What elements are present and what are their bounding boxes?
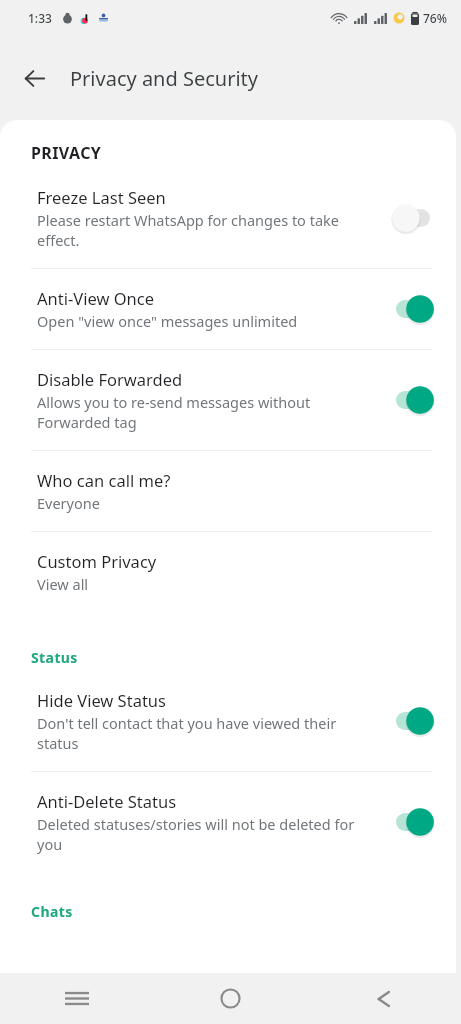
button[interactable]: Hide View Status xyxy=(0,671,456,771)
staticText: Don't tell contact that you have viewed … xyxy=(37,713,378,753)
button[interactable]: Freeze Last Seen xyxy=(0,168,456,268)
staticText: Everyone xyxy=(37,493,100,513)
staticText: Please restart WhatsApp for changes to t… xyxy=(37,210,378,250)
staticText: Chats xyxy=(31,902,73,921)
staticText: Privacy and Security xyxy=(70,65,259,92)
staticText: Anti-View Once xyxy=(37,287,154,309)
staticText: Anti-Delete Status xyxy=(37,790,177,812)
button[interactable]: Custom Privacy xyxy=(0,532,456,612)
button[interactable]: Who can call me? xyxy=(0,451,456,531)
button[interactable]: Toggle on xyxy=(390,706,436,736)
button[interactable]: Toggle on xyxy=(390,385,436,415)
staticText: View all xyxy=(37,574,89,594)
button[interactable]: Toggle on xyxy=(390,807,436,837)
button[interactable]: Back xyxy=(10,54,58,102)
button[interactable]: Home xyxy=(153,973,307,1024)
button[interactable]: Anti-View Once xyxy=(0,269,456,349)
staticText: Allows you to re-send messages without F… xyxy=(37,392,378,432)
staticText: 76% xyxy=(423,10,447,26)
staticText: Status xyxy=(31,648,78,667)
staticText: Freeze Last Seen xyxy=(37,186,166,208)
staticText: Disable Forwarded xyxy=(37,368,183,390)
button[interactable]: Disable Forwarded xyxy=(0,350,456,450)
staticText: Who can call me? xyxy=(37,469,171,491)
staticText: Open "view once" messages unlimited xyxy=(37,311,298,331)
button[interactable]: Toggle on xyxy=(390,294,436,324)
button[interactable]: Toggle off xyxy=(390,203,436,233)
staticText: Deleted statuses/stories will not be del… xyxy=(37,814,378,854)
button[interactable]: Back xyxy=(307,973,461,1024)
staticText: Custom Privacy xyxy=(37,550,157,572)
button[interactable]: Anti-Delete Status xyxy=(0,772,456,872)
staticText: 1:33 xyxy=(28,10,52,26)
button[interactable]: Recent apps xyxy=(0,973,153,1024)
staticText: Hide View Status xyxy=(37,689,166,711)
staticText: PRIVACY xyxy=(31,142,102,164)
